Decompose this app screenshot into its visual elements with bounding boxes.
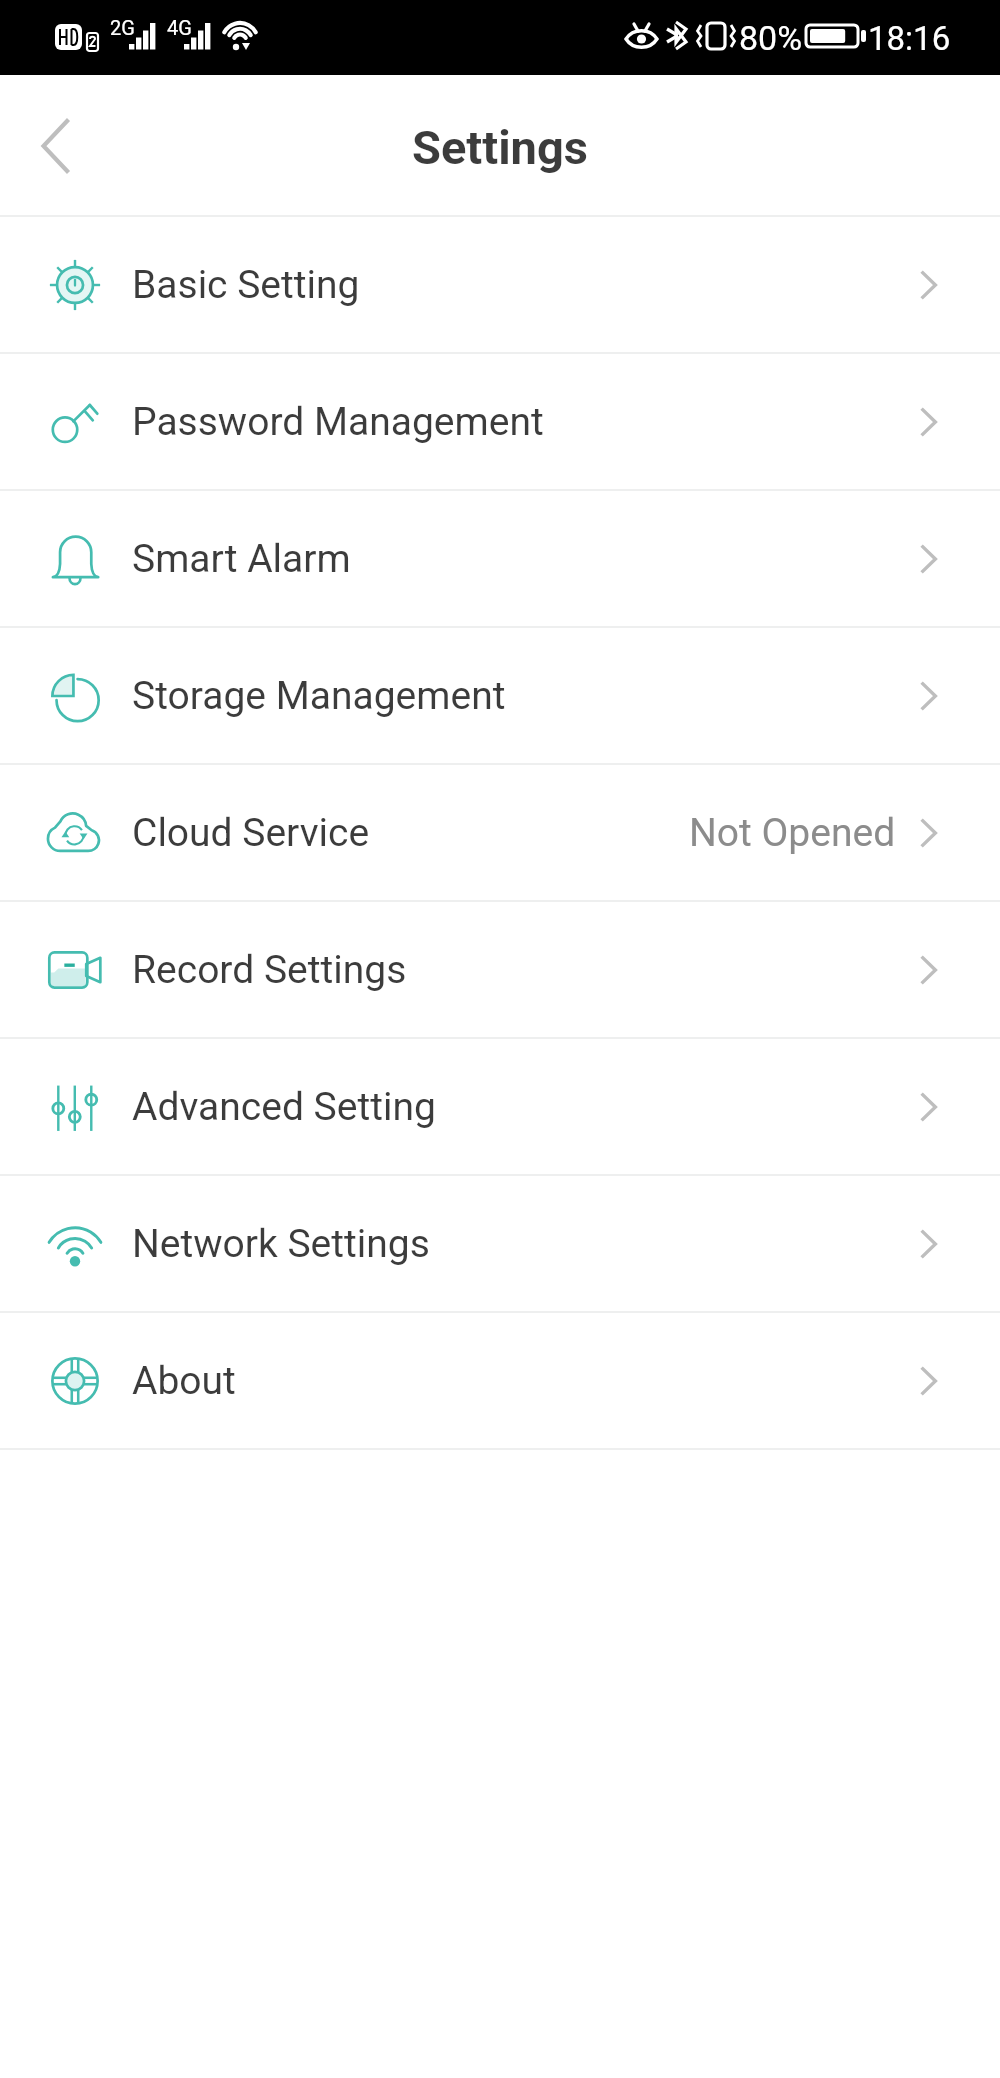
button[interactable]: Storage Management xyxy=(0,628,1000,763)
staticText: About xyxy=(132,1358,236,1404)
staticText: Password Management xyxy=(132,399,544,445)
staticText: Network Settings xyxy=(132,1221,430,1267)
button[interactable]: Network Settings xyxy=(0,1176,1000,1311)
staticText: Advanced Setting xyxy=(132,1084,436,1130)
staticText: 4G xyxy=(167,16,192,39)
button[interactable]: Advanced Setting xyxy=(0,1039,1000,1174)
button[interactable]: Cloud Service xyxy=(0,765,1000,900)
staticText: Record Settings xyxy=(132,947,407,993)
staticText: Settings xyxy=(412,120,588,175)
button[interactable]: Back xyxy=(0,76,112,216)
button[interactable]: Record Settings xyxy=(0,902,1000,1037)
staticText: Cloud Service xyxy=(132,810,370,856)
button[interactable]: Smart Alarm xyxy=(0,491,1000,626)
staticText: 2G xyxy=(110,16,135,39)
button[interactable]: Basic Setting xyxy=(0,217,1000,352)
staticText: 80% xyxy=(739,18,803,58)
staticText: Not Opened xyxy=(689,810,896,856)
button[interactable]: Password Management xyxy=(0,354,1000,489)
staticText: Basic Setting xyxy=(132,262,360,308)
staticText: Storage Management xyxy=(132,673,506,719)
staticText: Smart Alarm xyxy=(132,536,351,582)
staticText: 18:16 xyxy=(868,19,951,58)
button[interactable]: About xyxy=(0,1313,1000,1448)
